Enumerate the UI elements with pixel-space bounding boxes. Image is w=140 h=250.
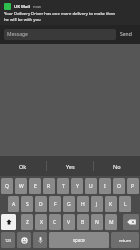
staticText: A (12, 201, 16, 208)
button[interactable]: I (99, 178, 111, 194)
staticText: J (96, 201, 98, 208)
button[interactable]: J (91, 196, 103, 212)
button[interactable]: F (49, 196, 61, 212)
button[interactable]: Q (1, 178, 13, 194)
staticText: No (113, 163, 121, 170)
staticText: U (89, 183, 93, 190)
button[interactable]: Message (4, 29, 116, 40)
button[interactable]: Backspace (123, 214, 139, 230)
button[interactable]: Send (116, 29, 136, 40)
button[interactable]: Z (21, 214, 33, 230)
button[interactable]: K (105, 196, 117, 212)
button[interactable]: UK Mail (0, 0, 140, 25)
staticText: G (67, 201, 71, 208)
staticText: H (81, 201, 85, 208)
button[interactable]: A (8, 196, 19, 212)
staticText: E (34, 183, 37, 190)
button[interactable]: C (49, 214, 61, 230)
staticText: Yes (66, 163, 75, 170)
staticText: X (40, 219, 43, 226)
staticText: Message (7, 31, 28, 38)
button[interactable]: L (119, 196, 131, 212)
staticText: C (53, 219, 57, 226)
staticText: space (73, 237, 85, 243)
button[interactable]: return (111, 232, 139, 248)
staticText: S (26, 201, 29, 208)
staticText: L (124, 201, 127, 208)
staticText: K (109, 201, 113, 208)
button[interactable]: Voice input (33, 232, 47, 248)
button[interactable]: R (43, 178, 55, 194)
staticText: Q (5, 183, 9, 190)
button[interactable]: O (113, 178, 125, 194)
button[interactable]: N (91, 214, 103, 230)
button[interactable]: P (127, 178, 139, 194)
staticText: now (33, 4, 41, 9)
staticText: Send (120, 31, 132, 38)
button[interactable]: U (85, 178, 97, 194)
button[interactable]: B (77, 214, 89, 230)
button[interactable]: G (63, 196, 75, 212)
staticText: I (104, 183, 106, 190)
staticText: UK Mail (14, 4, 30, 10)
button[interactable]: Ok (0, 156, 46, 176)
staticText: Y (76, 183, 79, 190)
button[interactable]: Shift (1, 214, 16, 230)
button[interactable]: W (15, 178, 27, 194)
staticText: O (117, 183, 121, 190)
staticText: T (62, 183, 65, 190)
staticText: V (67, 219, 71, 226)
staticText: M (109, 219, 114, 226)
button[interactable]: Yes (47, 156, 93, 176)
staticText: R (47, 183, 51, 190)
staticText: B (81, 219, 85, 226)
staticText: N (95, 219, 99, 226)
button[interactable]: M (105, 214, 117, 230)
staticText: Your Delivery Driver has one more delive… (4, 11, 116, 22)
staticText: return (119, 238, 131, 243)
button[interactable]: V (63, 214, 75, 230)
button[interactable]: D (35, 196, 47, 212)
staticText: Ok (19, 163, 27, 170)
button[interactable]: E (29, 178, 41, 194)
staticText: F (54, 201, 57, 208)
button[interactable]: X (35, 214, 47, 230)
button[interactable]: Emoji (17, 232, 31, 248)
button[interactable]: 123 (1, 232, 15, 248)
staticText: 123 (5, 238, 12, 243)
button[interactable]: No (94, 156, 140, 176)
button[interactable]: T (57, 178, 69, 194)
staticText: W (19, 183, 24, 190)
button[interactable]: H (77, 196, 89, 212)
staticText: P (131, 183, 135, 190)
button[interactable]: Y (71, 178, 83, 194)
button[interactable]: space (49, 232, 109, 248)
staticText: Z (26, 219, 29, 226)
staticText: D (39, 201, 43, 208)
button[interactable]: S (21, 196, 33, 212)
